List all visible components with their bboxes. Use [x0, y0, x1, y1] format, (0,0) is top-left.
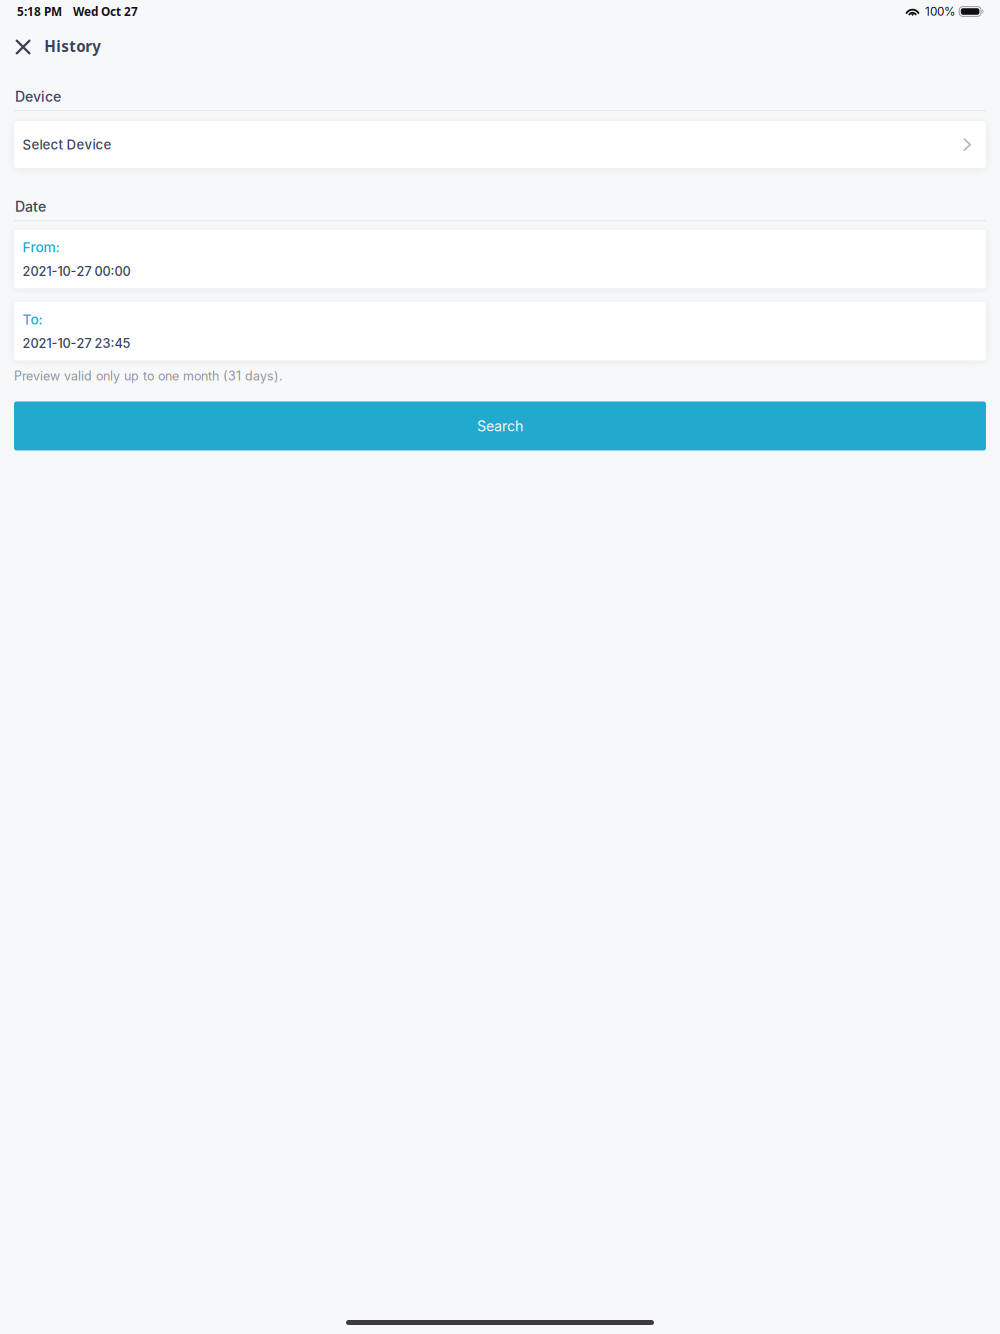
- staticText: Date: [15, 198, 46, 215]
- button[interactable]: Search: [0, 401, 1000, 450]
- staticText: Wed Oct 27: [73, 3, 138, 20]
- button[interactable]: Close: [0, 23, 44, 67]
- staticText: 2021-10-27 00:00: [22, 264, 130, 279]
- staticText: History: [44, 36, 101, 56]
- staticText: 2021-10-27 23:45: [22, 336, 130, 351]
- staticText: Preview valid only up to one month (31 d…: [14, 368, 283, 383]
- staticText: 5:18 PM: [17, 3, 62, 20]
- staticText: To:: [22, 311, 42, 328]
- button[interactable]: From:: [0, 230, 1000, 288]
- button[interactable]: Select Device: [0, 121, 1000, 168]
- staticText: Device: [15, 88, 61, 105]
- staticText: From:: [22, 239, 59, 256]
- staticText: 100%: [925, 4, 956, 19]
- button[interactable]: To:: [0, 302, 1000, 360]
- button[interactable]: History: [44, 23, 101, 67]
- staticText: Select Device: [22, 137, 111, 153]
- staticText: Search: [477, 417, 523, 435]
